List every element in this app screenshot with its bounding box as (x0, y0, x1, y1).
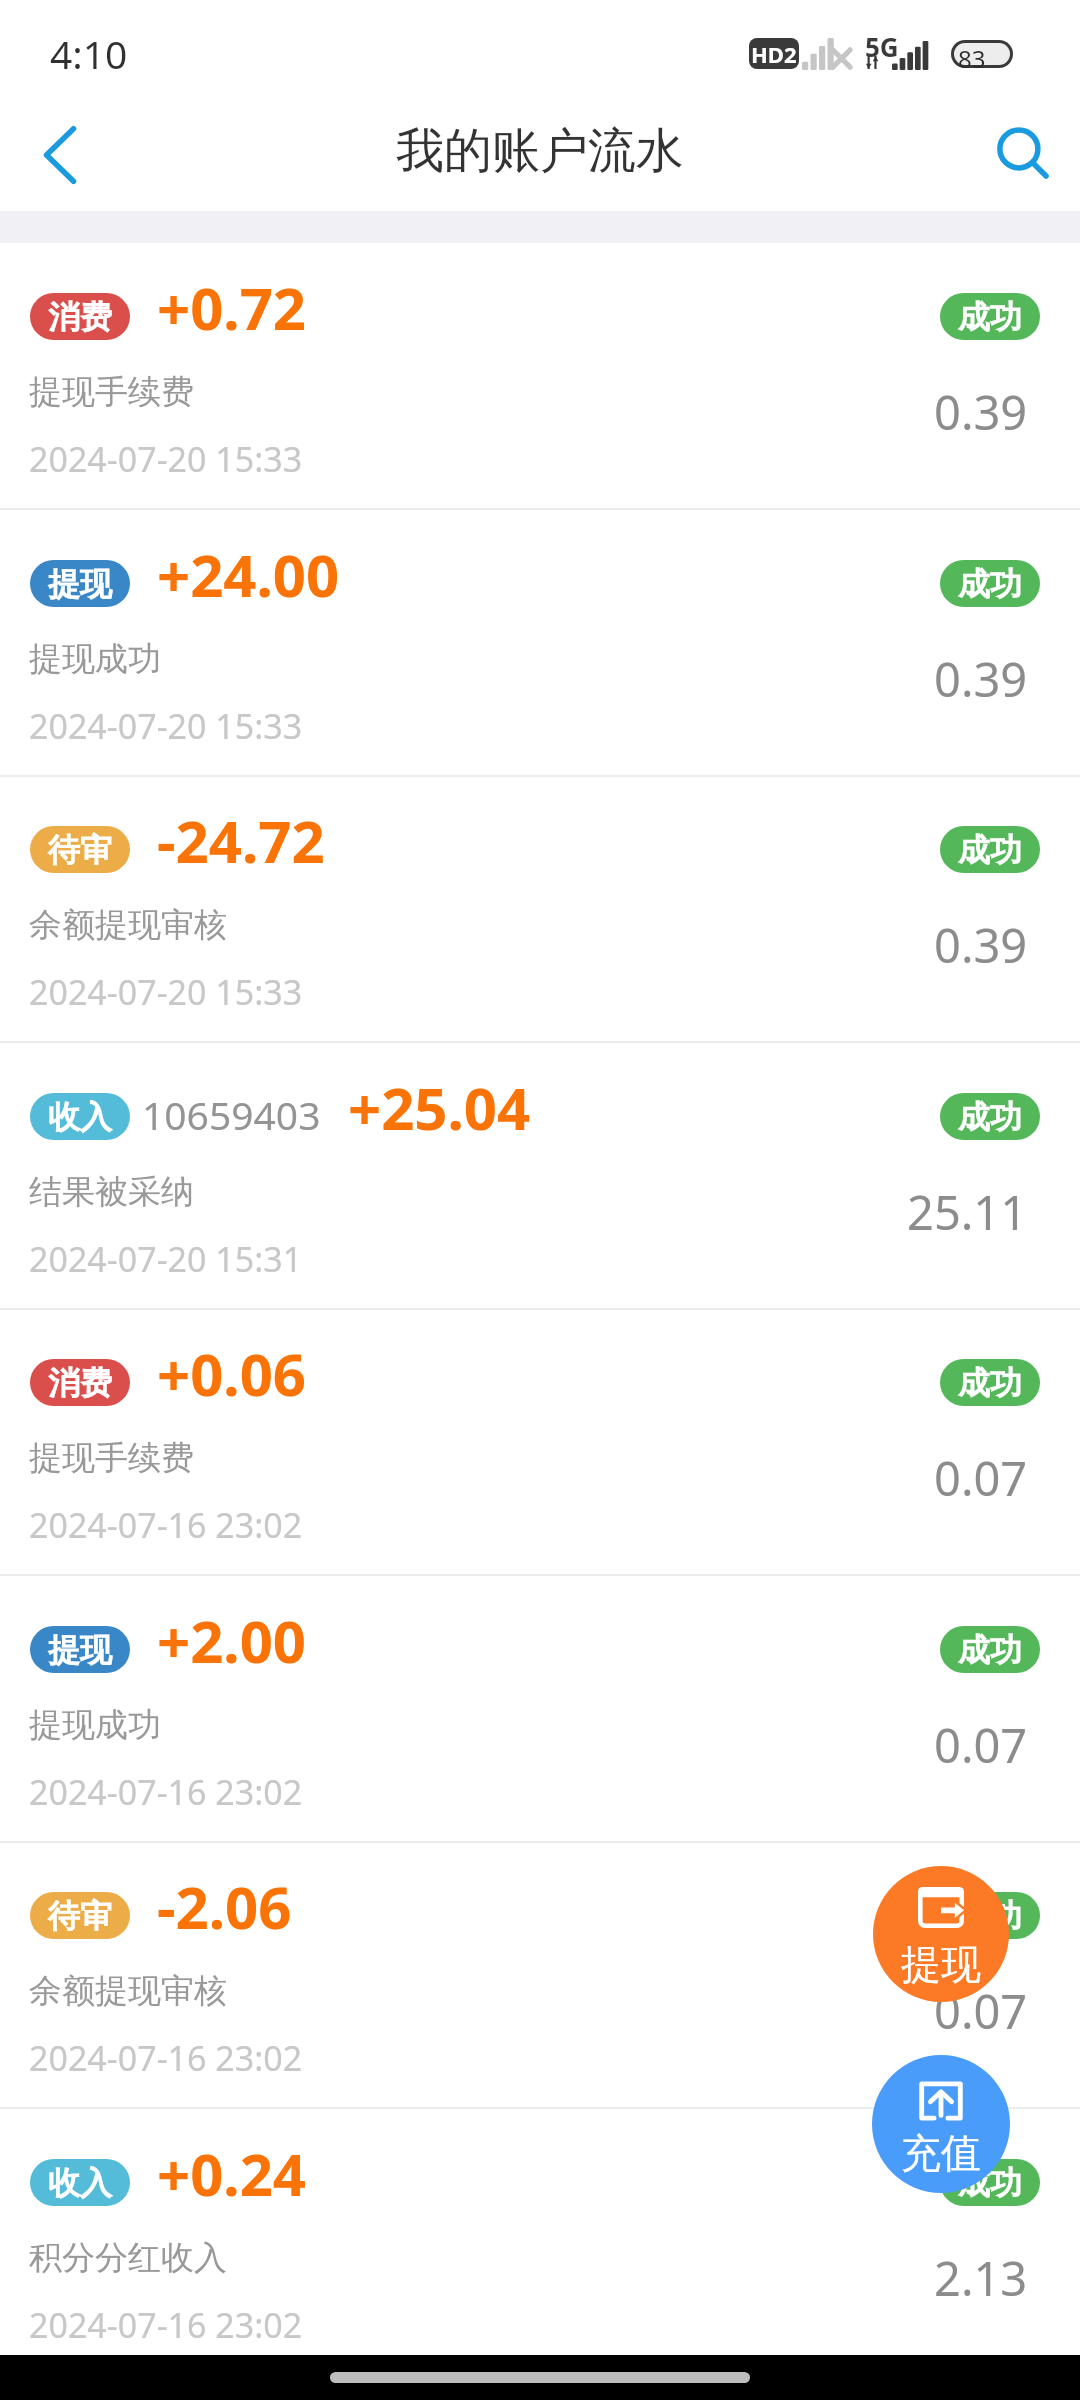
staticText: 提现 (48, 564, 112, 604)
staticText: 成功 (958, 2163, 1022, 2203)
staticText: 提现成功 (29, 638, 161, 680)
staticText: 2.13 (934, 2246, 1028, 2310)
staticText: 2024-07-16 23:02 (29, 2035, 303, 2081)
staticText: 提现手续费 (29, 1437, 194, 1479)
button[interactable]: 消费 (0, 1310, 1080, 1575)
staticText: 83 (958, 42, 986, 75)
staticText: 2024-07-16 23:02 (29, 1769, 303, 1815)
staticText: 成功 (958, 1097, 1022, 1137)
staticText: 提现 (48, 1630, 112, 1670)
staticText: -24.72 (157, 801, 325, 880)
staticText: 收入 (48, 1097, 112, 1137)
staticText: 2024-07-20 15:31 (29, 1236, 303, 1282)
staticText: 充值 (901, 2128, 981, 2178)
staticText: 10659403 (142, 1088, 321, 1141)
staticText: 2024-07-20 15:33 (29, 969, 303, 1015)
staticText: 5G (865, 29, 899, 64)
staticText: +2.00 (157, 1601, 307, 1680)
button[interactable]: 充值 (872, 2055, 1010, 2193)
staticText: +0.06 (157, 1334, 307, 1413)
staticText: 2024-07-20 15:33 (29, 436, 303, 482)
button[interactable]: 收入 (0, 1044, 1080, 1309)
staticText: 25.11 (907, 1180, 1028, 1244)
button[interactable]: 提现 (873, 1866, 1009, 2002)
staticText: 消费 (48, 1363, 112, 1403)
staticText: 0.07 (934, 1446, 1028, 1510)
button[interactable]: 消费 (0, 244, 1080, 509)
button[interactable]: 搜索 (972, 102, 1080, 212)
staticText: HD2 (751, 39, 797, 69)
staticText: 2024-07-16 23:02 (29, 1502, 303, 1548)
staticText: +25.04 (348, 1068, 531, 1147)
staticText: 2024-07-20 15:33 (29, 703, 303, 749)
staticText: 提现 (901, 1939, 981, 1989)
staticText: 0.07 (934, 1713, 1028, 1777)
staticText: 消费 (48, 297, 112, 337)
staticText: 成功 (958, 830, 1022, 870)
staticText: -2.06 (157, 1867, 292, 1946)
button[interactable]: 提现 (0, 511, 1080, 776)
staticText: 待审 (48, 830, 112, 870)
staticText: 4:10 (50, 27, 128, 80)
staticText: 成功 (958, 1630, 1022, 1670)
staticText: 0.39 (934, 913, 1028, 977)
staticText: 提现成功 (29, 1704, 161, 1746)
staticText: 结果被采纳 (29, 1171, 194, 1213)
button[interactable]: 待审 (0, 1843, 1080, 2108)
staticText: 余额提现审核 (29, 904, 227, 946)
staticText: 0.39 (934, 647, 1028, 711)
staticText: 收入 (48, 2163, 112, 2203)
staticText: 2024-07-16 23:02 (29, 2302, 303, 2348)
staticText: +0.24 (157, 2134, 307, 2213)
staticText: 0.07 (934, 1979, 1028, 2043)
staticText: 余额提现审核 (29, 1970, 227, 2012)
staticText: 待审 (48, 1896, 112, 1936)
button[interactable]: 收入 (0, 2110, 1080, 2375)
button[interactable]: 提现 (0, 1577, 1080, 1842)
staticText: 成功 (958, 1896, 1022, 1936)
staticText: 提现手续费 (29, 371, 194, 413)
staticText: 成功 (958, 1363, 1022, 1403)
staticText: 成功 (958, 297, 1022, 337)
staticText: 成功 (958, 564, 1022, 604)
button[interactable]: 待审 (0, 777, 1080, 1042)
button[interactable]: 返回 (5, 100, 115, 210)
staticText: 我的账户流水 (396, 121, 684, 181)
staticText: +0.72 (157, 268, 307, 347)
staticText: +24.00 (157, 535, 340, 614)
staticText: 积分分红收入 (29, 2237, 227, 2279)
staticText: 0.39 (934, 380, 1028, 444)
